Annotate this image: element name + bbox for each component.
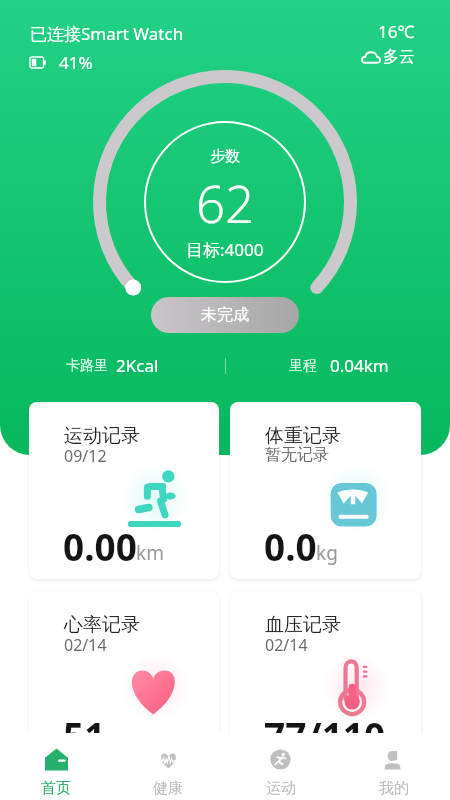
staticText: 血压记录	[265, 613, 341, 637]
staticText: 步数	[210, 147, 240, 166]
staticText: 卡路里	[66, 357, 108, 375]
staticText: 里程	[289, 357, 317, 375]
staticText: 我的	[379, 779, 409, 798]
staticText: 运动记录	[64, 424, 140, 448]
button[interactable]: 体重记录	[230, 402, 421, 579]
staticText: 暂无记录	[265, 445, 329, 465]
staticText: 77/110	[264, 710, 386, 733]
button[interactable]: 健康	[112, 733, 224, 800]
staticText: 16℃	[378, 20, 415, 43]
staticText: 02/14	[64, 634, 107, 656]
button[interactable]: 未完成	[151, 297, 299, 333]
button[interactable]: 首页	[0, 733, 112, 800]
staticText: 健康	[153, 779, 183, 798]
staticText: 体重记录	[265, 424, 341, 448]
staticText: kg	[316, 540, 338, 566]
button[interactable]: 我的	[337, 733, 450, 800]
staticText: 62	[196, 168, 255, 237]
staticText: 首页	[41, 779, 71, 798]
staticText: 0.04km	[330, 354, 389, 377]
staticText: 多云	[383, 47, 415, 67]
staticText: 已连接Smart Watch	[30, 22, 184, 45]
button[interactable]: 心率记录	[29, 591, 219, 733]
button[interactable]: 运动	[224, 733, 337, 800]
staticText: 09/12	[64, 445, 107, 467]
staticText: 02/14	[265, 634, 308, 656]
staticText: 0.00	[63, 521, 137, 571]
staticText: 目标:4000	[186, 238, 264, 261]
staticText: 心率记录	[64, 613, 140, 637]
button[interactable]: 运动记录	[29, 402, 219, 579]
staticText: 41%	[59, 51, 93, 74]
button[interactable]: 血压记录	[230, 591, 421, 733]
staticText: 2Kcal	[116, 354, 159, 377]
staticText: 运动	[266, 779, 296, 798]
staticText: 51	[63, 710, 106, 733]
staticText: km	[136, 540, 164, 566]
staticText: 0.0	[264, 521, 317, 571]
staticText: 未完成	[201, 305, 249, 325]
